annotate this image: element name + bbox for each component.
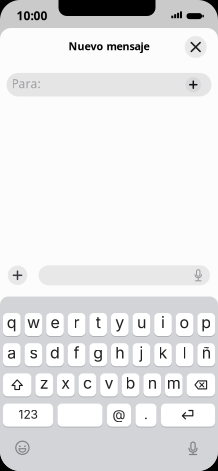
staticText: x: [61, 373, 70, 393]
button[interactable]: [57, 403, 102, 427]
button[interactable]: Emojis: [14, 440, 30, 456]
staticText: t: [96, 313, 101, 332]
staticText: r: [74, 313, 80, 332]
staticText: z: [40, 373, 49, 393]
button[interactable]: q: [3, 312, 21, 336]
button[interactable]: x: [57, 373, 75, 397]
button[interactable]: c: [79, 373, 96, 397]
staticText: h: [115, 343, 124, 362]
staticText: .: [144, 406, 148, 422]
button[interactable]: i: [154, 312, 172, 336]
button[interactable]: .: [135, 403, 156, 427]
staticText: u: [137, 313, 146, 332]
button[interactable]: l: [176, 343, 193, 367]
staticText: k: [158, 343, 167, 362]
staticText: v: [104, 373, 113, 393]
staticText: ñ: [202, 343, 211, 362]
button[interactable]: z: [35, 373, 53, 397]
button[interactable]: d: [46, 343, 64, 367]
staticText: g: [93, 343, 103, 362]
staticText: p: [201, 313, 211, 332]
button[interactable]: b: [122, 373, 139, 397]
button[interactable]: 123: [3, 403, 53, 427]
staticText: n: [148, 373, 157, 393]
button[interactable]: v: [100, 373, 118, 397]
staticText: d: [50, 343, 60, 362]
button[interactable]: s: [25, 343, 42, 367]
staticText: 10:00: [16, 7, 47, 23]
staticText: Para:: [11, 75, 40, 91]
button[interactable]: r: [68, 312, 85, 336]
staticText: s: [29, 343, 37, 362]
button[interactable]: g: [89, 343, 107, 367]
button[interactable]: y: [111, 312, 129, 336]
staticText: q: [7, 313, 17, 332]
button[interactable]: Añadir contacto: [186, 77, 201, 92]
staticText: o: [180, 313, 190, 332]
staticText: w: [27, 313, 40, 332]
button[interactable]: w: [25, 312, 42, 336]
button[interactable]: Borrar: [187, 373, 215, 397]
staticText: y: [115, 313, 124, 332]
button[interactable]: t: [89, 312, 107, 336]
staticText: c: [83, 373, 92, 393]
button[interactable]: j: [133, 343, 150, 367]
button[interactable]: @: [107, 403, 131, 427]
staticText: a: [7, 343, 16, 362]
button[interactable]: Mayúsculas: [3, 373, 31, 397]
button[interactable]: k: [154, 343, 172, 367]
staticText: Nuevo mensaje: [68, 39, 149, 53]
staticText: 123: [18, 407, 37, 421]
button[interactable]: Intro: [161, 403, 215, 427]
button[interactable]: a: [3, 343, 21, 367]
staticText: e: [50, 313, 59, 332]
button[interactable]: Mensaje de texto: [38, 265, 210, 285]
button[interactable]: o: [176, 312, 193, 336]
button[interactable]: p: [197, 312, 215, 336]
button[interactable]: e: [46, 312, 64, 336]
button[interactable]: ñ: [197, 343, 215, 367]
staticText: @: [112, 406, 125, 422]
staticText: b: [126, 373, 136, 393]
staticText: m: [167, 373, 181, 393]
staticText: l: [183, 343, 187, 362]
button[interactable]: Añadir adjunto: [8, 266, 27, 285]
button[interactable]: n: [143, 373, 161, 397]
button[interactable]: f: [68, 343, 85, 367]
button[interactable]: h: [111, 343, 129, 367]
button[interactable]: u: [133, 312, 150, 336]
staticText: f: [74, 343, 80, 362]
staticText: j: [139, 343, 143, 362]
button[interactable]: Dictado: [185, 440, 201, 456]
staticText: i: [161, 313, 165, 332]
button[interactable]: Cerrar: [185, 36, 207, 58]
button[interactable]: m: [165, 373, 183, 397]
